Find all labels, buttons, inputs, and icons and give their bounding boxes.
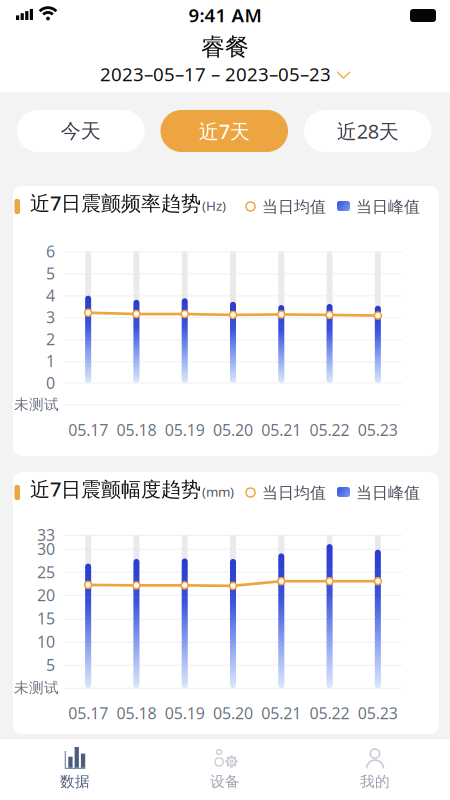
staticText: 今天 <box>61 119 101 143</box>
staticText: 近7日震颤频率趋势 <box>30 189 201 216</box>
staticText: 近7天 <box>199 118 250 144</box>
staticText: 05.20 <box>213 419 253 440</box>
staticText: 05.17 <box>68 419 108 440</box>
staticText: 当日峰值 <box>356 197 420 217</box>
staticText: 05.18 <box>116 702 156 723</box>
staticText: 3 <box>46 306 55 328</box>
staticText: 10 <box>37 631 55 652</box>
staticText: 6 <box>46 241 55 262</box>
button[interactable]: 近28天 <box>304 110 431 152</box>
staticText: 当日峰值 <box>356 483 420 503</box>
staticText: 05.23 <box>358 702 398 723</box>
staticText: 4 <box>46 285 55 306</box>
button[interactable]: 我的 <box>300 739 450 799</box>
staticText: 20 <box>37 584 55 606</box>
staticText: 05.21 <box>261 702 301 723</box>
staticText: 未测试 <box>14 396 59 414</box>
staticText: 05.19 <box>165 702 205 723</box>
staticText: 33 <box>37 524 55 545</box>
button[interactable]: 设备 <box>150 739 300 799</box>
staticText: 数据 <box>60 772 90 790</box>
staticText: 1 <box>46 350 55 371</box>
staticText: 25 <box>37 561 55 582</box>
staticText: (mm) <box>202 483 234 500</box>
staticText: 未测试 <box>14 679 59 697</box>
staticText: 05.22 <box>310 702 350 723</box>
staticText: 近28天 <box>337 118 399 144</box>
staticText: 9:41 AM <box>188 3 261 27</box>
staticText: 当日均值 <box>262 483 326 503</box>
staticText: 30 <box>37 538 55 559</box>
staticText: 5 <box>46 654 55 675</box>
staticText: 我的 <box>360 772 390 790</box>
staticText: 2023–05–17 – 2023–05–23 <box>100 62 331 86</box>
staticText: 05.18 <box>116 419 156 440</box>
staticText: 5 <box>46 263 55 284</box>
staticText: (Hz) <box>202 197 226 214</box>
staticText: 05.22 <box>310 419 350 440</box>
button[interactable]: 数据 <box>0 739 150 799</box>
staticText: 05.23 <box>358 419 398 440</box>
staticText: 当日均值 <box>262 197 326 217</box>
staticText: 05.17 <box>68 702 108 723</box>
button[interactable]: 今天 <box>17 110 144 152</box>
staticText: 05.21 <box>261 419 301 440</box>
staticText: 05.20 <box>213 702 253 723</box>
staticText: 近7日震颤幅度趋势 <box>30 475 201 502</box>
button[interactable]: 近7天 <box>160 110 288 152</box>
staticText: 设备 <box>210 772 240 790</box>
staticText: 睿餐 <box>201 32 249 62</box>
staticText: 2 <box>46 328 55 350</box>
staticText: 0 <box>46 372 55 393</box>
staticText: 05.19 <box>165 419 205 440</box>
staticText: 15 <box>37 608 55 629</box>
